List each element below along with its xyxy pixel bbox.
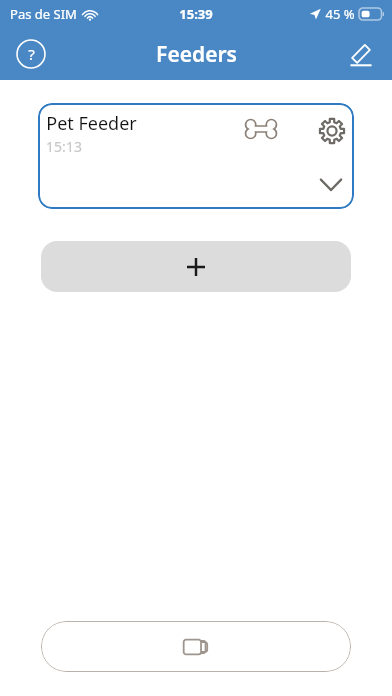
staticText: ? xyxy=(28,44,35,64)
staticText: 15:39 xyxy=(179,5,213,23)
button[interactable]: Expand xyxy=(314,167,348,201)
button[interactable]: Edit xyxy=(344,37,378,71)
button[interactable]: Add feeder xyxy=(41,241,351,292)
staticText: Pas de SIM xyxy=(10,5,77,23)
staticText: Pet Feeder xyxy=(46,111,137,136)
staticText: 15:13 xyxy=(46,137,82,156)
button[interactable]: Pet Feeder xyxy=(38,103,354,209)
button[interactable]: Settings xyxy=(316,115,348,147)
staticText: Feeders xyxy=(156,40,237,69)
button[interactable]: Feed xyxy=(244,116,278,142)
button[interactable]: Help xyxy=(16,39,46,69)
staticText: 45 % xyxy=(325,5,355,23)
button[interactable]: Devices xyxy=(41,621,351,672)
